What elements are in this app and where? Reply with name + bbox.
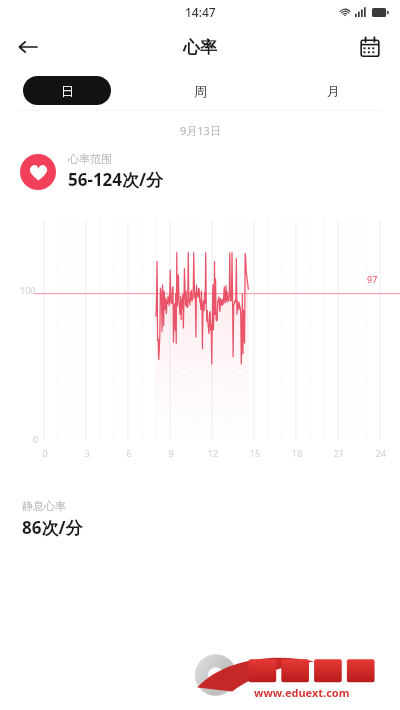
staticText: 静息心率 <box>22 499 66 513</box>
staticText: 心率 <box>183 37 217 58</box>
staticText: 6 <box>123 447 135 459</box>
staticText: 18 <box>291 447 303 459</box>
button[interactable]: Calendar <box>350 27 390 67</box>
staticText: 3 <box>81 447 93 459</box>
button[interactable]: Back <box>8 27 48 67</box>
staticText: www.eduext.com <box>254 685 350 700</box>
button[interactable]: 周 <box>134 76 267 105</box>
staticText: 9月13日 <box>180 123 221 138</box>
staticText: 0 <box>33 433 39 445</box>
staticText: 0 <box>39 447 51 459</box>
staticText: 86次/分 <box>22 516 83 539</box>
staticText: 9 <box>165 447 177 459</box>
staticText: 100 <box>20 284 36 296</box>
staticText: 心率范围 <box>68 152 112 166</box>
staticText: 日 <box>61 83 74 99</box>
staticText: 15 <box>249 447 261 459</box>
staticText: 56-124次/分 <box>68 168 164 191</box>
button[interactable]: 心率范围 <box>20 152 400 191</box>
button[interactable]: 静息心率 <box>22 499 400 539</box>
button[interactable]: 日 <box>23 76 111 105</box>
staticText: 月 <box>327 83 340 99</box>
staticText: 97 <box>367 273 378 285</box>
staticText: 12 <box>207 447 219 459</box>
staticText: 24 <box>375 447 387 459</box>
button[interactable]: 月 <box>267 76 400 105</box>
staticText: 周 <box>194 83 207 99</box>
staticText: 21 <box>333 447 345 459</box>
staticText: 14:47 <box>185 4 216 20</box>
